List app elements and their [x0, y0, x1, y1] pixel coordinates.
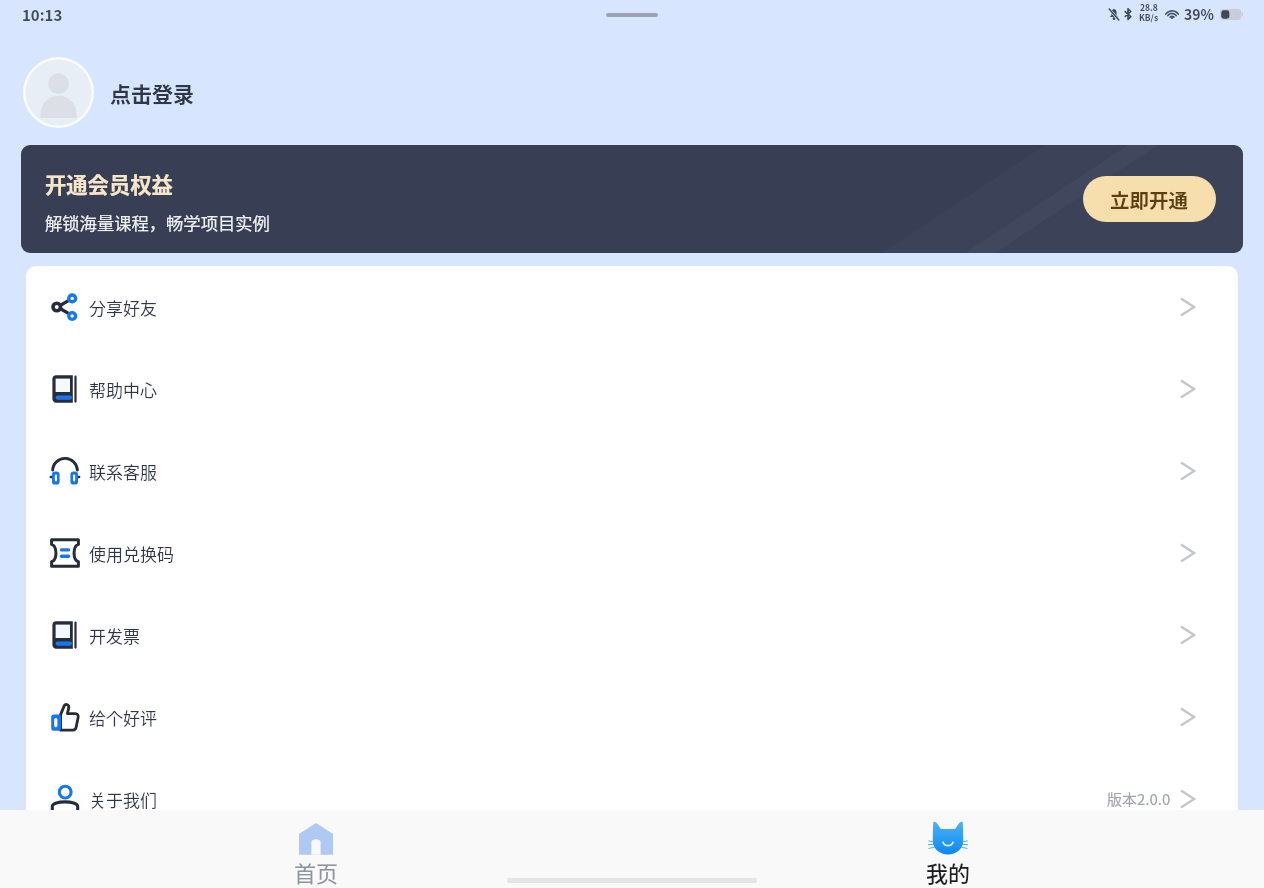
button[interactable]: 关于我们: [26, 758, 1238, 840]
staticText: 39%: [1184, 4, 1215, 24]
staticText: 分享好友: [89, 295, 157, 320]
staticText: 开发票: [89, 623, 140, 648]
button[interactable]: 使用兑换码: [26, 512, 1238, 594]
staticText: 首页: [294, 856, 339, 888]
staticText: 联系客服: [89, 459, 157, 484]
staticText: 关于我们: [89, 787, 157, 812]
staticText: 给个好评: [89, 705, 157, 730]
staticText: 开通会员权益: [45, 168, 173, 199]
button[interactable]: 立即开通: [1083, 176, 1216, 222]
staticText: KB/s: [1139, 11, 1159, 23]
button[interactable]: 开通会员权益: [21, 145, 1243, 253]
button[interactable]: 点击登录: [23, 57, 208, 128]
button[interactable]: 联系客服: [26, 430, 1238, 512]
button[interactable]: 开发票: [26, 594, 1238, 676]
staticText: 版本2.0.0: [1107, 788, 1171, 810]
staticText: 我的: [926, 856, 971, 888]
staticText: 使用兑换码: [89, 541, 174, 566]
button[interactable]: 首页: [251, 810, 381, 888]
staticText: 解锁海量课程，畅学项目实例: [45, 210, 270, 235]
button[interactable]: 帮助中心: [26, 348, 1238, 430]
staticText: 立即开通: [1110, 185, 1189, 213]
staticText: 28.8: [1140, 1, 1158, 13]
button[interactable]: 给个好评: [26, 676, 1238, 758]
staticText: 点击登录: [110, 78, 194, 108]
staticText: 帮助中心: [89, 377, 157, 402]
button[interactable]: 分享好友: [26, 266, 1238, 348]
staticText: 10:13: [22, 4, 63, 26]
button[interactable]: 我的: [883, 810, 1013, 888]
